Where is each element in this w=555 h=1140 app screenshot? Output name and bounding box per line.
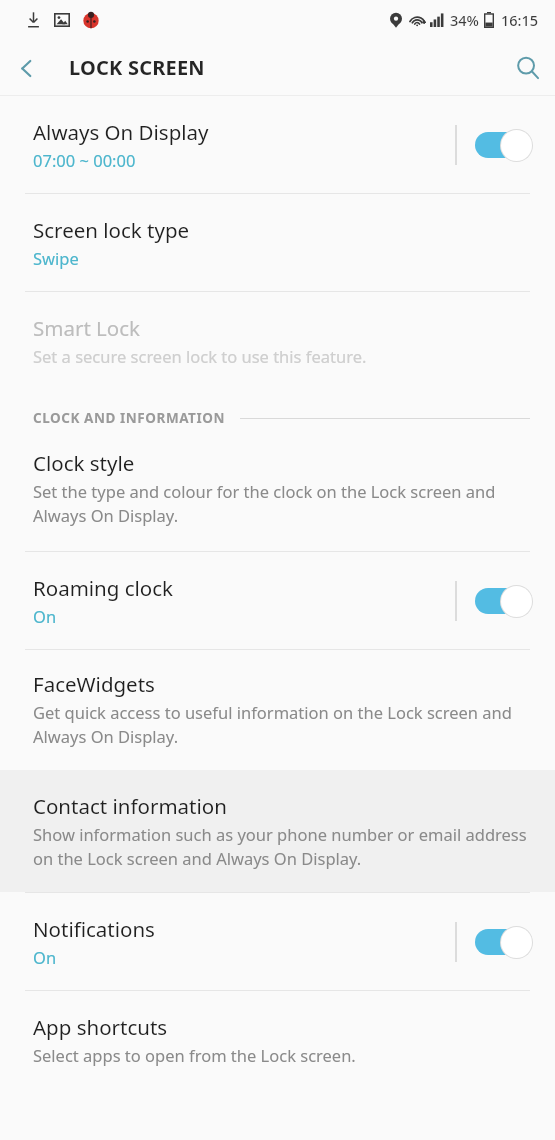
button[interactable]: Toggle bbox=[475, 584, 533, 618]
staticText: Contact information bbox=[33, 792, 227, 820]
button[interactable]: Roaming clock bbox=[0, 552, 555, 649]
staticText: On bbox=[33, 946, 57, 968]
button: Smart Lock bbox=[0, 292, 555, 387]
button[interactable]: Back bbox=[0, 42, 52, 94]
button[interactable]: Search bbox=[501, 41, 555, 95]
staticText: App shortcuts bbox=[33, 1013, 168, 1041]
staticText: Show information such as your phone numb… bbox=[33, 823, 537, 870]
staticText: FaceWidgets bbox=[33, 670, 155, 698]
button[interactable]: Clock style bbox=[0, 449, 555, 551]
staticText: Set the type and colour for the clock on… bbox=[33, 480, 537, 527]
staticText: CLOCK AND INFORMATION bbox=[33, 409, 226, 427]
button[interactable]: Toggle bbox=[475, 128, 533, 162]
staticText: On bbox=[33, 605, 57, 627]
staticText: Select apps to open from the Lock screen… bbox=[33, 1044, 356, 1066]
staticText: 34% bbox=[450, 10, 479, 30]
staticText: Set a secure screen lock to use this fea… bbox=[33, 345, 367, 367]
button[interactable]: Notifications bbox=[0, 893, 555, 990]
button[interactable]: Screen lock type bbox=[0, 194, 555, 291]
staticText: Swipe bbox=[33, 247, 79, 269]
staticText: Always On Display bbox=[33, 118, 209, 146]
button[interactable]: Always On Display bbox=[0, 96, 555, 193]
staticText: 07:00 ~ 00:00 bbox=[33, 149, 136, 171]
button[interactable]: Toggle bbox=[475, 925, 533, 959]
staticText: Get quick access to useful information o… bbox=[33, 701, 537, 748]
staticText: 16:15 bbox=[501, 10, 539, 30]
button[interactable]: App shortcuts bbox=[0, 991, 555, 1076]
staticText: LOCK SCREEN bbox=[69, 54, 205, 81]
button[interactable]: Contact information bbox=[0, 770, 555, 892]
staticText: Roaming clock bbox=[33, 574, 174, 602]
staticText: Smart Lock bbox=[33, 314, 141, 342]
staticText: Screen lock type bbox=[33, 216, 190, 244]
staticText: Clock style bbox=[33, 449, 135, 477]
staticText: Notifications bbox=[33, 915, 155, 943]
button[interactable]: FaceWidgets bbox=[0, 650, 555, 770]
